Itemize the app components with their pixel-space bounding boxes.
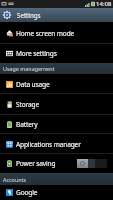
button[interactable]: Google [0, 185, 113, 200]
staticText: Applications manager [16, 140, 81, 149]
staticText: Usage management [3, 65, 55, 72]
staticText: Settings [17, 11, 41, 19]
button[interactable]: Storage [0, 94, 113, 115]
button[interactable]: Power saving toggle [77, 159, 107, 168]
staticText: Google [16, 188, 38, 197]
staticText: Accounts [3, 176, 27, 183]
button[interactable]: Settings [0, 8, 113, 22]
button[interactable]: Data usage [0, 74, 113, 94]
staticText: More settings [16, 49, 57, 58]
button[interactable]: Applications manager [0, 134, 113, 154]
staticText: Home screen mode [16, 29, 75, 38]
staticText: 14:08 [96, 0, 112, 8]
button[interactable]: Battery [0, 115, 113, 134]
button[interactable]: More settings [0, 44, 113, 63]
staticText: Power saving [16, 159, 56, 168]
staticText: Data usage [16, 80, 50, 89]
button[interactable]: Home screen mode [0, 22, 113, 44]
staticText: Battery [16, 120, 38, 129]
staticText: Storage [16, 100, 40, 109]
button[interactable]: Power saving [0, 154, 113, 173]
